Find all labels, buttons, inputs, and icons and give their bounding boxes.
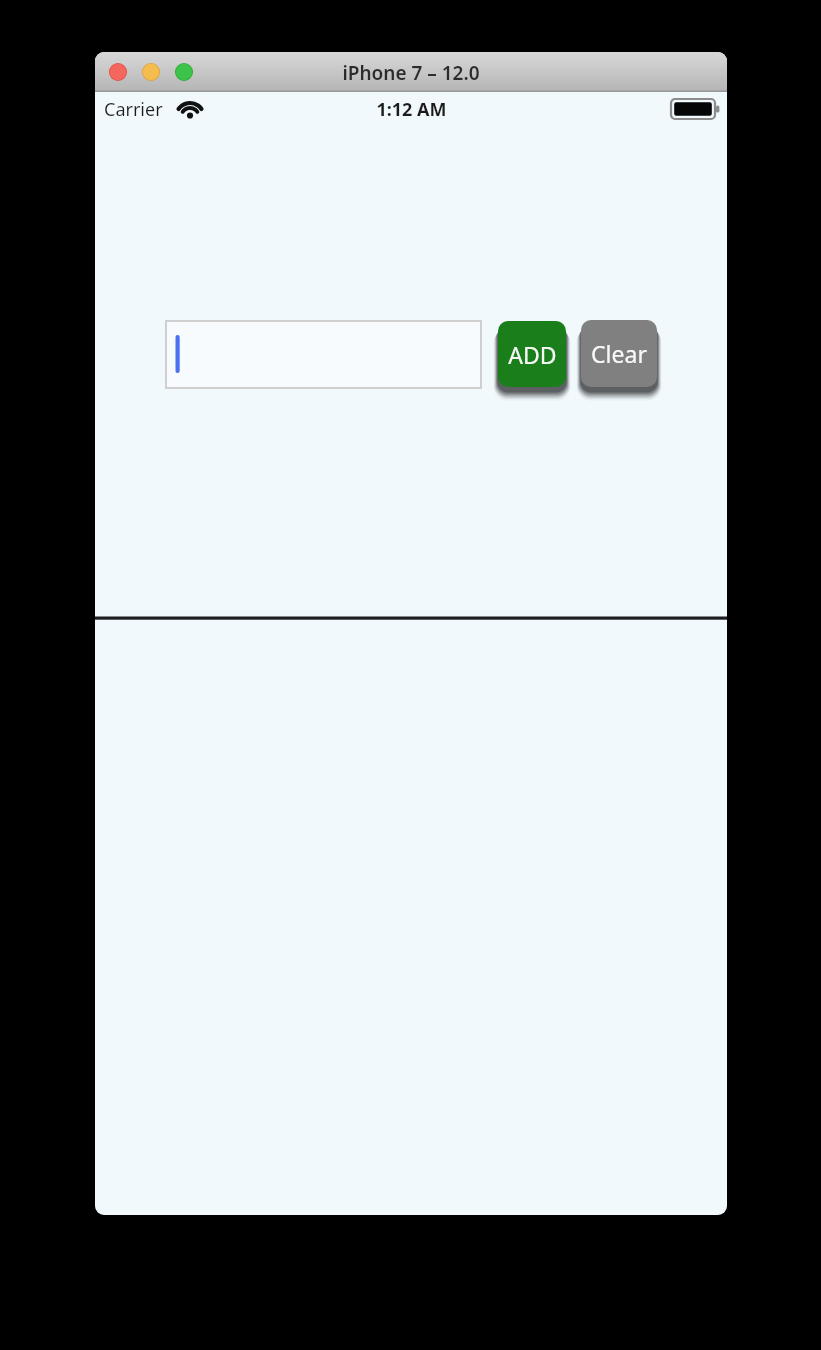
staticText: Clear	[591, 338, 647, 369]
staticText: ADD	[508, 339, 557, 370]
button[interactable]: Clear	[581, 320, 657, 387]
button[interactable]: Close window	[109, 63, 128, 82]
staticText: Carrier	[104, 97, 163, 122]
staticText: iPhone 7 – 12.0	[342, 60, 480, 86]
button[interactable]: Minimise window	[142, 63, 161, 82]
staticText: 1:12 AM	[376, 97, 447, 122]
button[interactable]: Zoom window	[175, 63, 194, 82]
button[interactable]: ADD	[498, 321, 566, 387]
button[interactable]: Text input field	[166, 321, 481, 388]
